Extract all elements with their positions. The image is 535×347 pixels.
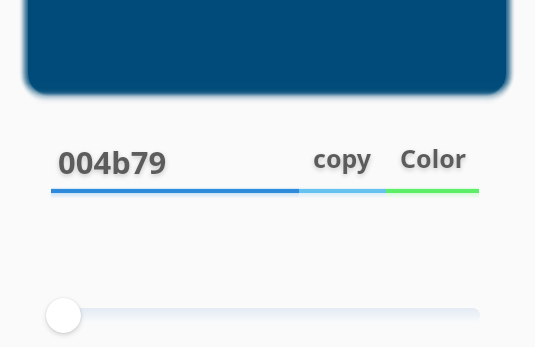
staticText: 004b79 <box>58 141 167 183</box>
button[interactable]: Slider handle <box>46 298 81 333</box>
button[interactable]: Colour swatch 004b79 <box>28 0 506 97</box>
staticText: copy <box>313 141 372 175</box>
staticText: Color <box>400 141 466 175</box>
button[interactable]: Color <box>394 139 472 177</box>
button[interactable]: copy <box>307 139 378 177</box>
button[interactable]: Shade slider <box>51 308 480 323</box>
